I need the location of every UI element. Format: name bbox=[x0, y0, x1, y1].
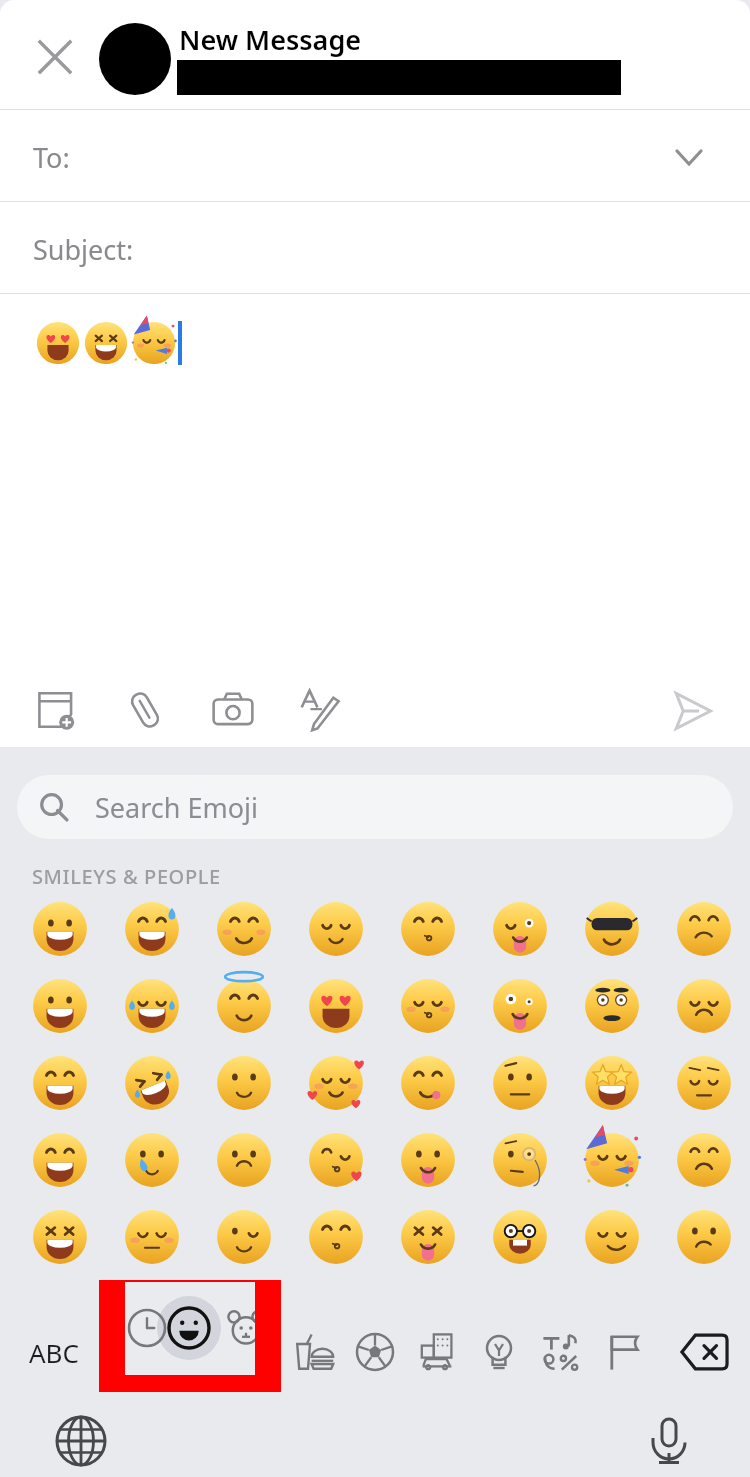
button[interactable]: Objects bbox=[465, 1318, 533, 1386]
button[interactable]: Recently used bbox=[113, 1318, 181, 1386]
button[interactable] bbox=[106, 1198, 198, 1275]
button[interactable] bbox=[382, 1198, 474, 1275]
button[interactable] bbox=[566, 1198, 658, 1275]
button[interactable] bbox=[658, 1121, 750, 1198]
staticText: ABC bbox=[29, 1335, 79, 1370]
button[interactable]: Food and drink bbox=[280, 1318, 348, 1386]
staticText: Subject: bbox=[33, 231, 134, 268]
button[interactable]: Animals and nature bbox=[212, 1318, 280, 1386]
button[interactable] bbox=[290, 890, 382, 967]
button[interactable]: Take photo bbox=[198, 675, 268, 745]
button[interactable] bbox=[382, 1044, 474, 1121]
button[interactable]: To: bbox=[0, 110, 750, 202]
button[interactable] bbox=[106, 967, 198, 1044]
button[interactable] bbox=[658, 1198, 750, 1275]
button[interactable] bbox=[474, 1198, 566, 1275]
staticText: Search Emoji bbox=[95, 789, 258, 826]
button[interactable] bbox=[474, 890, 566, 967]
staticText: To: bbox=[33, 139, 70, 176]
button[interactable]: Activity bbox=[341, 1318, 409, 1386]
button[interactable] bbox=[290, 1121, 382, 1198]
button[interactable]: Close bbox=[22, 24, 88, 90]
button[interactable]: Sender avatar bbox=[99, 23, 171, 95]
button[interactable] bbox=[382, 967, 474, 1044]
button[interactable] bbox=[198, 1044, 290, 1121]
button[interactable] bbox=[198, 1198, 290, 1275]
button[interactable] bbox=[290, 967, 382, 1044]
button[interactable] bbox=[14, 1121, 106, 1198]
button[interactable] bbox=[106, 1121, 198, 1198]
button[interactable] bbox=[14, 967, 106, 1044]
button[interactable]: Send bbox=[658, 677, 726, 745]
staticText: SMILEYS & PEOPLE bbox=[32, 863, 221, 890]
button[interactable] bbox=[382, 1121, 474, 1198]
button[interactable] bbox=[474, 967, 566, 1044]
button[interactable] bbox=[566, 890, 658, 967]
button[interactable] bbox=[566, 967, 658, 1044]
button[interactable] bbox=[658, 967, 750, 1044]
button[interactable] bbox=[658, 1044, 750, 1121]
button[interactable] bbox=[474, 1044, 566, 1121]
button[interactable]: Change keyboard bbox=[46, 1406, 116, 1476]
button[interactable] bbox=[198, 890, 290, 967]
button[interactable] bbox=[566, 1121, 658, 1198]
button[interactable]: Backspace bbox=[670, 1318, 738, 1386]
button[interactable] bbox=[106, 890, 198, 967]
button[interactable]: ABC bbox=[10, 1318, 98, 1386]
button[interactable]: Expand recipients bbox=[664, 132, 714, 182]
button[interactable]: Markup bbox=[286, 675, 356, 745]
button[interactable]: Dictate bbox=[634, 1406, 704, 1476]
staticText: New Message bbox=[179, 21, 362, 58]
button[interactable] bbox=[290, 1044, 382, 1121]
button[interactable] bbox=[14, 890, 106, 967]
button[interactable]: Flags bbox=[589, 1318, 657, 1386]
button[interactable] bbox=[14, 1198, 106, 1275]
button[interactable] bbox=[106, 1044, 198, 1121]
button[interactable] bbox=[566, 1044, 658, 1121]
button[interactable]: Insert drawing bbox=[22, 675, 92, 745]
button[interactable] bbox=[14, 1044, 106, 1121]
button[interactable]: Symbols bbox=[527, 1318, 595, 1386]
button[interactable] bbox=[382, 890, 474, 967]
button[interactable]: Smileys and people bbox=[155, 1318, 223, 1386]
button[interactable] bbox=[198, 1121, 290, 1198]
button[interactable]: Subject: bbox=[0, 202, 750, 294]
button[interactable] bbox=[658, 890, 750, 967]
button[interactable] bbox=[474, 1121, 566, 1198]
button[interactable]: Attach file bbox=[110, 675, 180, 745]
button[interactable]: Travel and places bbox=[403, 1318, 471, 1386]
button[interactable] bbox=[290, 1198, 382, 1275]
button[interactable] bbox=[198, 967, 290, 1044]
button[interactable]: Search Emoji bbox=[17, 775, 733, 839]
button[interactable] bbox=[0, 294, 750, 655]
